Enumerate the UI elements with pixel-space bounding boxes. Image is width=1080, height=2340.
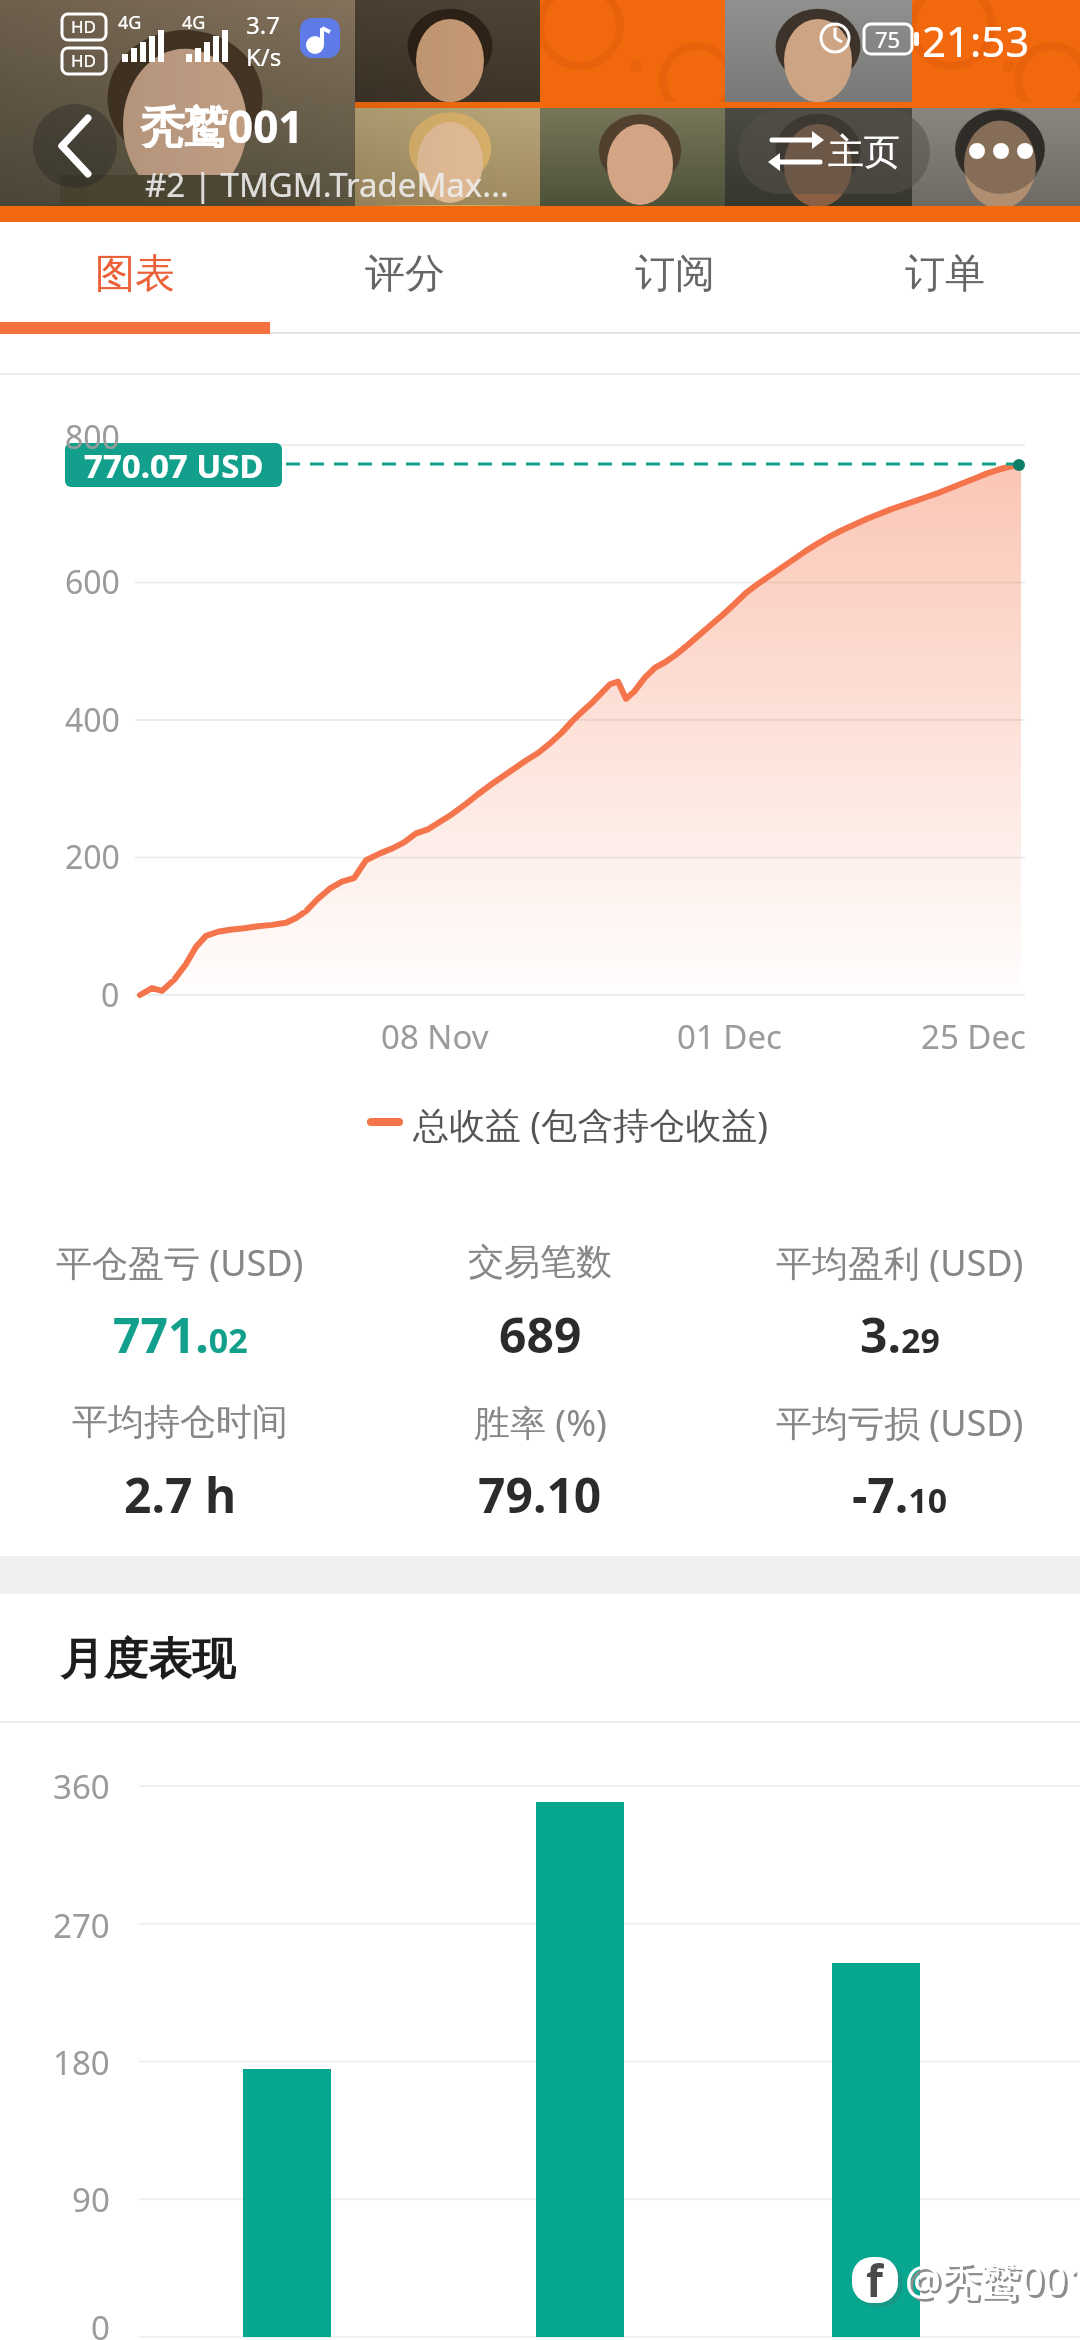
staticText: 689 [499,1302,582,1358]
button[interactable] [958,108,1044,194]
staticText: 600 [65,560,120,604]
staticText: HD [71,49,97,72]
staticText: 交易笔数 [468,1239,612,1284]
button[interactable] [33,104,117,188]
staticText: 胜率 (%) [474,1398,607,1444]
staticText: 770.07 USD [84,443,264,487]
staticText: 4G [118,10,142,34]
staticText: 2.7 h [124,1462,237,1518]
staticText: 4G [182,10,206,34]
button[interactable] [738,110,930,194]
button[interactable]: 图表 [0,224,270,322]
staticText: 订单 [905,248,985,298]
staticText: 200 [65,835,120,879]
button[interactable]: 订单 [810,224,1080,322]
staticText: 订阅 [635,248,715,298]
staticText: 总收益 (包含持仓收益) [413,1100,768,1146]
button[interactable]: 订阅 [540,224,810,322]
staticText: 01 Dec [677,1014,782,1056]
staticText: 771.02 [113,1302,248,1358]
staticText: 360 [53,1764,110,1808]
staticText: 主页 [828,129,900,174]
staticText: 评分 [365,248,445,298]
staticText: 图表 [95,248,175,298]
staticText: 3.7 [246,8,280,40]
staticText: 平均盈利 (USD) [776,1238,1024,1284]
staticText: 180 [53,2040,110,2084]
staticText: 21:53 [922,12,1030,64]
staticText: 90 [72,2177,110,2221]
staticText: 400 [65,698,120,742]
staticText: HD [71,15,97,38]
staticText: K/s [246,40,282,72]
staticText: 0 [91,2305,110,2340]
staticText: 月度表现 [60,1632,236,1684]
staticText: 08 Nov [381,1014,489,1056]
staticText: #2 | TMGM.TradeMax... [145,162,509,204]
staticText: 平仓盈亏 (USD) [56,1238,304,1284]
staticText: 平均亏损 (USD) [776,1398,1024,1444]
staticText: 75 [875,24,901,54]
staticText: @秃鹫001 [908,2255,1080,2305]
staticText: 平均持仓时间 [72,1399,288,1444]
staticText: 79.10 [478,1462,602,1518]
staticText: 270 [53,1903,110,1947]
staticText: 3.29 [860,1302,940,1358]
staticText: 800 [65,415,120,459]
staticText: f [866,2250,884,2306]
button[interactable]: 评分 [270,224,540,322]
staticText: 25 Dec [921,1014,1026,1056]
staticText: -7.10 [852,1462,948,1518]
staticText: 秃鹫001 [140,96,304,148]
staticText: 0 [101,973,120,1017]
staticText: @秃鹫001 [905,2252,1080,2302]
